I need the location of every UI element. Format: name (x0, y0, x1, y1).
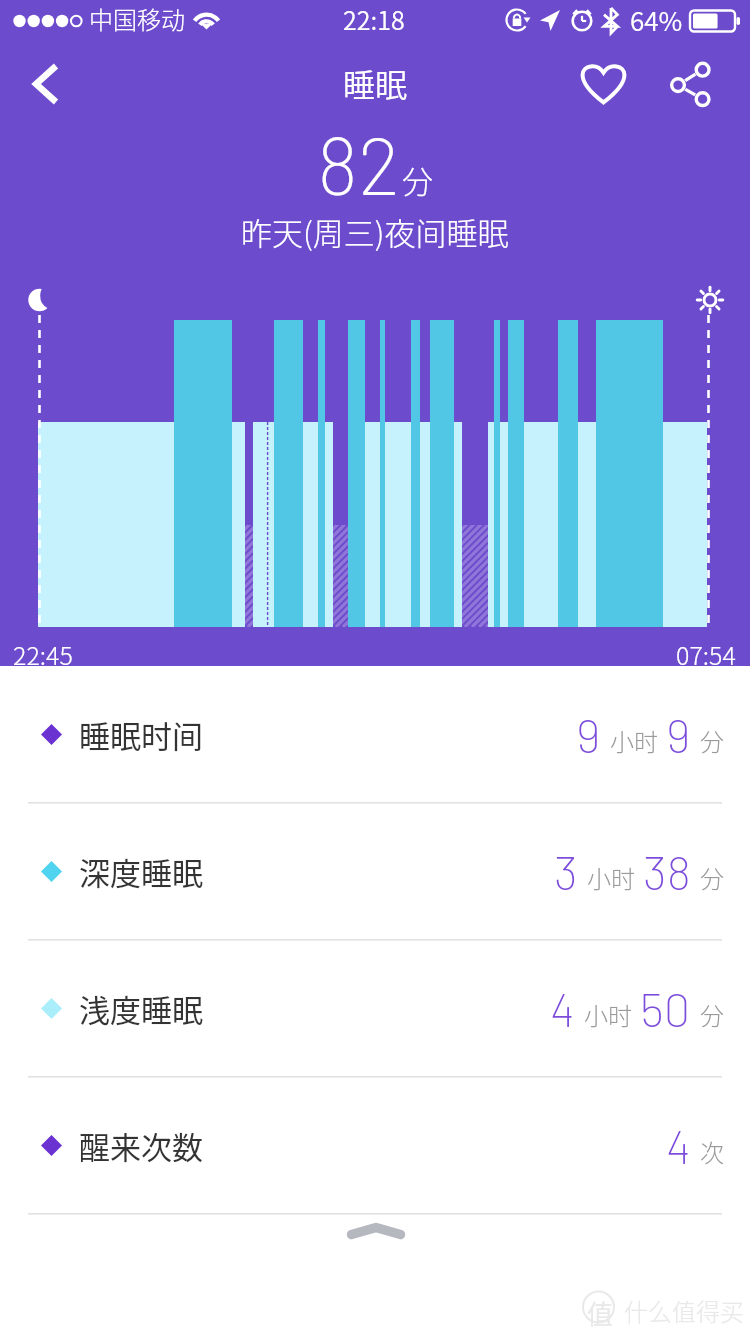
staticText: 3 (554, 843, 578, 899)
staticText: 64% (630, 1, 683, 39)
staticText: 22:45 (13, 636, 73, 672)
staticText: 什么值得买 (624, 1293, 744, 1328)
staticText: 值 (587, 1294, 614, 1332)
button[interactable]: 醒来次数 (0, 1077, 750, 1213)
staticText: 4 (666, 1117, 691, 1173)
staticText: 9 (576, 706, 601, 762)
staticText: 浅度睡眠 (79, 986, 203, 1031)
staticText: 小时 (584, 997, 632, 1032)
button[interactable]: Back (11, 49, 81, 119)
staticText: 睡眠 (343, 60, 408, 106)
staticText: 9 (666, 706, 691, 762)
staticText: 昨天(周三)夜间睡眠 (241, 209, 509, 254)
staticText: 82 (317, 115, 401, 211)
button[interactable]: 深度睡眠 (0, 803, 750, 939)
staticText: 22:18 (343, 1, 405, 37)
staticText: 07:54 (676, 636, 736, 672)
staticText: 分 (700, 860, 724, 895)
staticText: 分 (402, 157, 433, 202)
staticText: 小时 (587, 860, 635, 895)
staticText: 睡眠时间 (79, 712, 203, 757)
staticText: 50 (640, 980, 691, 1036)
button[interactable]: Favorite (567, 46, 639, 118)
button[interactable]: Share (654, 48, 726, 120)
staticText: 38 (643, 843, 691, 899)
staticText: 分 (700, 723, 724, 758)
staticText: 深度睡眠 (79, 849, 203, 894)
button[interactable]: 浅度睡眠 (0, 940, 750, 1076)
staticText: 分 (700, 997, 724, 1032)
staticText: 4 (550, 980, 575, 1036)
staticText: 醒来次数 (79, 1123, 203, 1168)
staticText: 中国移动 (89, 1, 185, 36)
button[interactable]: 睡眠时间 (0, 666, 750, 802)
staticText: 次 (700, 1134, 724, 1169)
staticText: 小时 (610, 723, 658, 758)
